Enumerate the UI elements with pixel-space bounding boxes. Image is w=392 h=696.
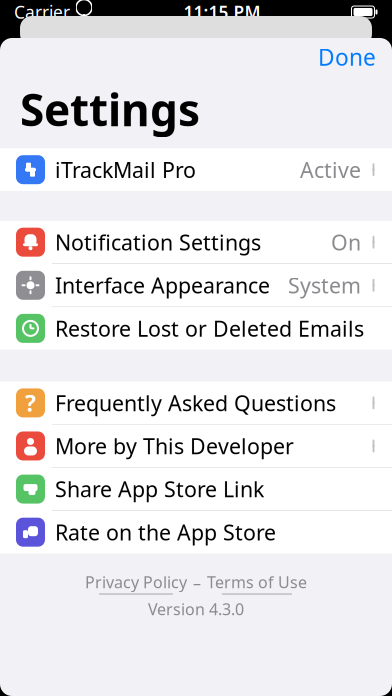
staticText: Version 4.3.0 xyxy=(148,598,244,620)
button[interactable]: Interface Appearance xyxy=(0,264,392,307)
staticText: iTrackMail Pro xyxy=(55,155,196,184)
staticText: Terms of Use xyxy=(207,571,307,593)
staticText: Interface Appearance xyxy=(55,271,270,299)
button[interactable]: iTrackMail Pro xyxy=(0,148,392,191)
button[interactable]: ? xyxy=(0,382,392,425)
staticText: Active xyxy=(300,155,361,184)
button[interactable]: Privacy Policy xyxy=(85,571,187,594)
staticText: Frequently Asked Questions xyxy=(55,389,336,417)
staticText: System xyxy=(288,271,361,299)
staticText: – xyxy=(193,572,201,593)
button[interactable]: Restore Lost or Deleted Emails xyxy=(0,307,392,350)
staticText: Notification Settings xyxy=(55,228,261,256)
button[interactable]: Done xyxy=(302,34,392,80)
staticText: Restore Lost or Deleted Emails xyxy=(55,314,364,342)
button[interactable]: Share App Store Link xyxy=(0,468,392,511)
button[interactable]: Rate on the App Store xyxy=(0,511,392,553)
staticText: 11:15 PM xyxy=(183,0,260,23)
staticText: Carrier xyxy=(14,0,70,23)
staticText: Rate on the App Store xyxy=(55,518,276,546)
staticText: More by This Developer xyxy=(55,432,294,460)
button[interactable]: Notification Settings xyxy=(0,221,392,264)
staticText: Done xyxy=(318,42,376,72)
button[interactable]: More by This Developer xyxy=(0,425,392,468)
staticText: On xyxy=(331,228,361,256)
staticText: Share App Store Link xyxy=(55,475,264,503)
staticText: ? xyxy=(25,388,36,418)
button[interactable]: Terms of Use xyxy=(207,571,307,594)
staticText: Settings xyxy=(20,80,200,138)
staticText: Privacy Policy xyxy=(85,571,187,593)
